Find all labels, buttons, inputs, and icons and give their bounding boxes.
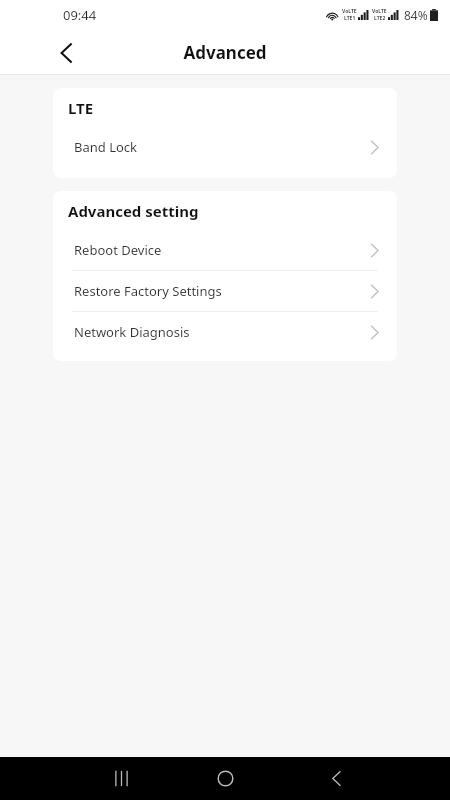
staticText: LTE (68, 98, 94, 118)
staticText: VoLTE (342, 8, 357, 15)
staticText: Band Lock (74, 138, 138, 156)
button[interactable]: Home (203, 757, 247, 800)
staticText: Network Diagnosis (74, 323, 190, 341)
staticText: Reboot Device (74, 241, 162, 259)
staticText: VoLTE (372, 8, 387, 15)
button[interactable]: Recent apps (99, 757, 143, 800)
staticText: Restore Factory Settings (74, 282, 222, 300)
staticText: Advanced (183, 41, 267, 64)
staticText: LTE2 (374, 15, 386, 22)
button[interactable]: Back (45, 32, 87, 74)
staticText: Advanced setting (68, 201, 199, 221)
staticText: 09:44 (63, 6, 97, 24)
staticText: LTE1 (344, 15, 356, 22)
button[interactable]: Network Diagnosis (53, 312, 397, 352)
staticText: 84% (404, 7, 428, 23)
button[interactable]: Reboot Device (53, 230, 397, 270)
button[interactable]: Band Lock (53, 127, 397, 167)
button[interactable]: Restore Factory Settings (53, 271, 397, 311)
button[interactable]: Back (314, 757, 358, 800)
